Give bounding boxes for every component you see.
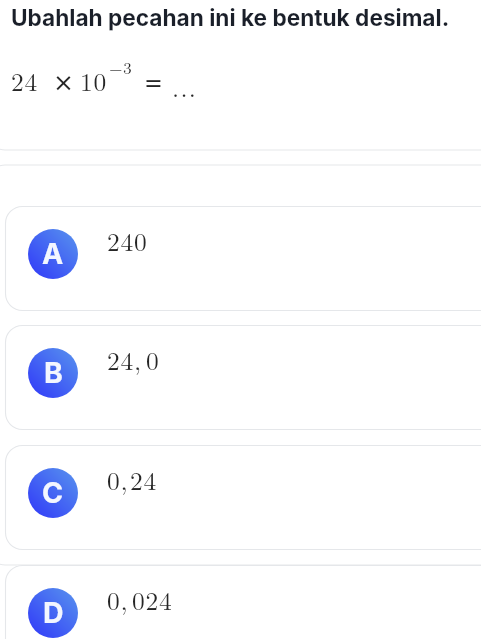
staticText: 24: [11, 62, 39, 98]
staticText: −3: [109, 57, 133, 79]
staticText: =: [144, 70, 163, 96]
staticText: 240: [107, 222, 148, 258]
staticText: 0: [146, 341, 160, 377]
button[interactable]: Jawaban D. 0,024: [5, 565, 481, 639]
staticText: 0,: [107, 461, 129, 497]
staticText: Ubahlah pecahan ini ke bentuk desimal.: [11, 4, 450, 31]
staticText: 024: [132, 581, 173, 617]
staticText: 24: [130, 461, 158, 497]
staticText: 10: [80, 62, 108, 98]
staticText: 0,: [107, 581, 129, 617]
staticText: 24,: [107, 341, 142, 377]
staticText: A: [42, 236, 64, 270]
button[interactable]: Jawaban A. 240: [5, 206, 481, 311]
button[interactable]: Jawaban C. 0,24: [5, 445, 481, 550]
button[interactable]: Jawaban B. 24,0: [5, 325, 481, 430]
staticText: D: [43, 595, 64, 629]
staticText: B: [44, 355, 63, 389]
staticText: C: [42, 475, 64, 509]
staticText: ×: [53, 68, 74, 97]
staticText: ...: [172, 68, 198, 104]
